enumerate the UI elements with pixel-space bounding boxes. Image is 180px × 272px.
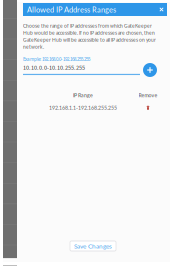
button[interactable]: Close — [156, 3, 167, 16]
staticText: Allowed IP Address Ranges — [27, 5, 116, 14]
staticText: 192.168.1.1-192.168.255.255 — [49, 105, 117, 111]
staticText: Save Changes — [74, 242, 112, 250]
staticText: IP Range — [73, 92, 93, 98]
button[interactable]: Remove 192.168.1.1-192.168.255.255 — [128, 104, 168, 111]
button[interactable]: Save Changes — [70, 241, 116, 251]
staticText: Example: 192.168.0.0-192.168.255.255 — [23, 56, 90, 63]
staticText: 10.10.0.0-10.10.255.255 — [23, 63, 85, 72]
staticText: Remove — [138, 92, 157, 98]
staticText: Choose the range of IP addresses from wh… — [23, 23, 156, 50]
